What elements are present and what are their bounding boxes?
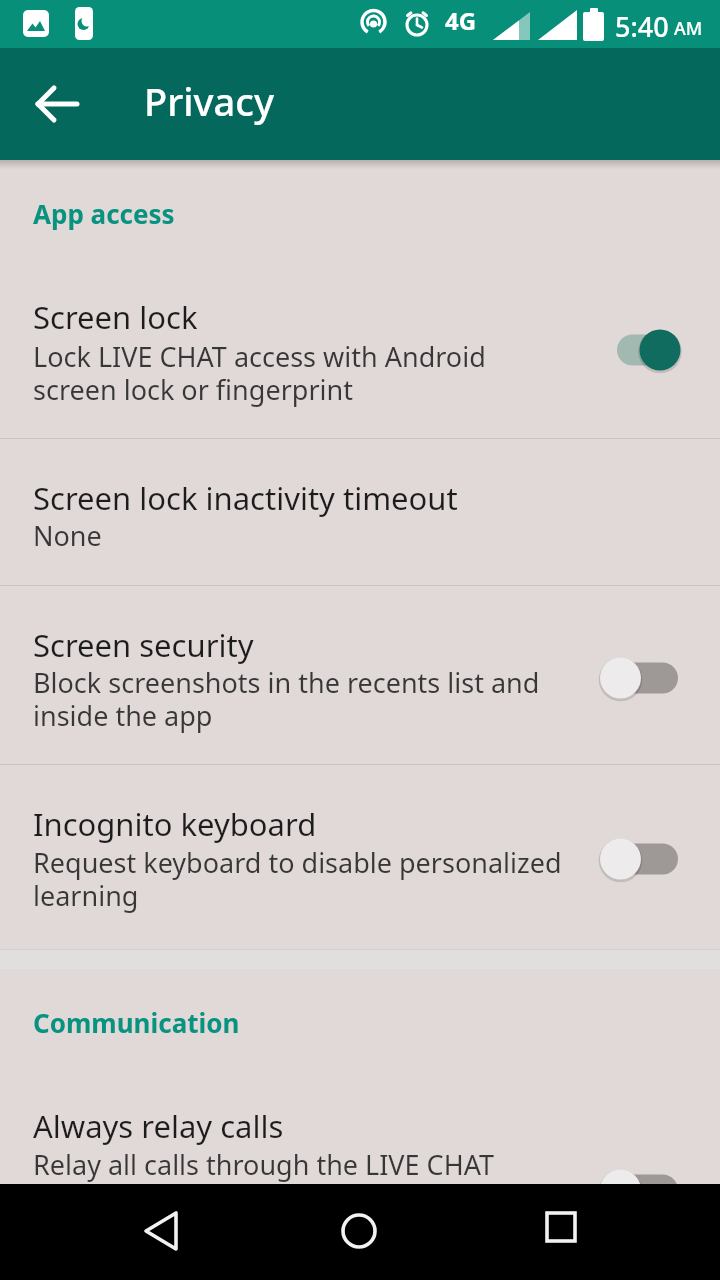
staticText: Request keyboard to disable personalized… — [33, 844, 562, 914]
staticText: Screen lock — [33, 296, 198, 338]
button[interactable] — [0, 439, 720, 585]
button[interactable] — [598, 326, 682, 374]
button[interactable] — [0, 586, 720, 764]
staticText: Lock LIVE CHAT access with Android scree… — [33, 338, 486, 408]
button[interactable] — [0, 1038, 720, 1184]
button[interactable] — [541, 1208, 581, 1248]
staticText: Screen security — [33, 624, 254, 666]
staticText: None — [33, 517, 102, 554]
staticText: Incognito keyboard — [33, 803, 317, 845]
button[interactable] — [30, 76, 86, 132]
button[interactable] — [598, 1166, 682, 1184]
button[interactable] — [141, 1208, 181, 1252]
button[interactable] — [339, 1208, 379, 1248]
staticText: Privacy — [144, 75, 274, 127]
staticText: 5:40 — [615, 8, 669, 45]
staticText: 4G — [445, 4, 477, 37]
button[interactable] — [0, 248, 720, 438]
staticText: AM — [674, 16, 703, 41]
button[interactable] — [598, 654, 682, 702]
button[interactable] — [0, 765, 720, 941]
staticText: Always relay calls — [33, 1105, 284, 1147]
button[interactable] — [598, 835, 682, 883]
staticText: Relay all calls through the LIVE CHAT — [33, 1146, 495, 1183]
staticText: Block screenshots in the recents list an… — [33, 664, 540, 734]
staticText: Communication — [33, 1005, 240, 1040]
staticText: App access — [33, 196, 175, 231]
staticText: Screen lock inactivity timeout — [33, 477, 458, 519]
